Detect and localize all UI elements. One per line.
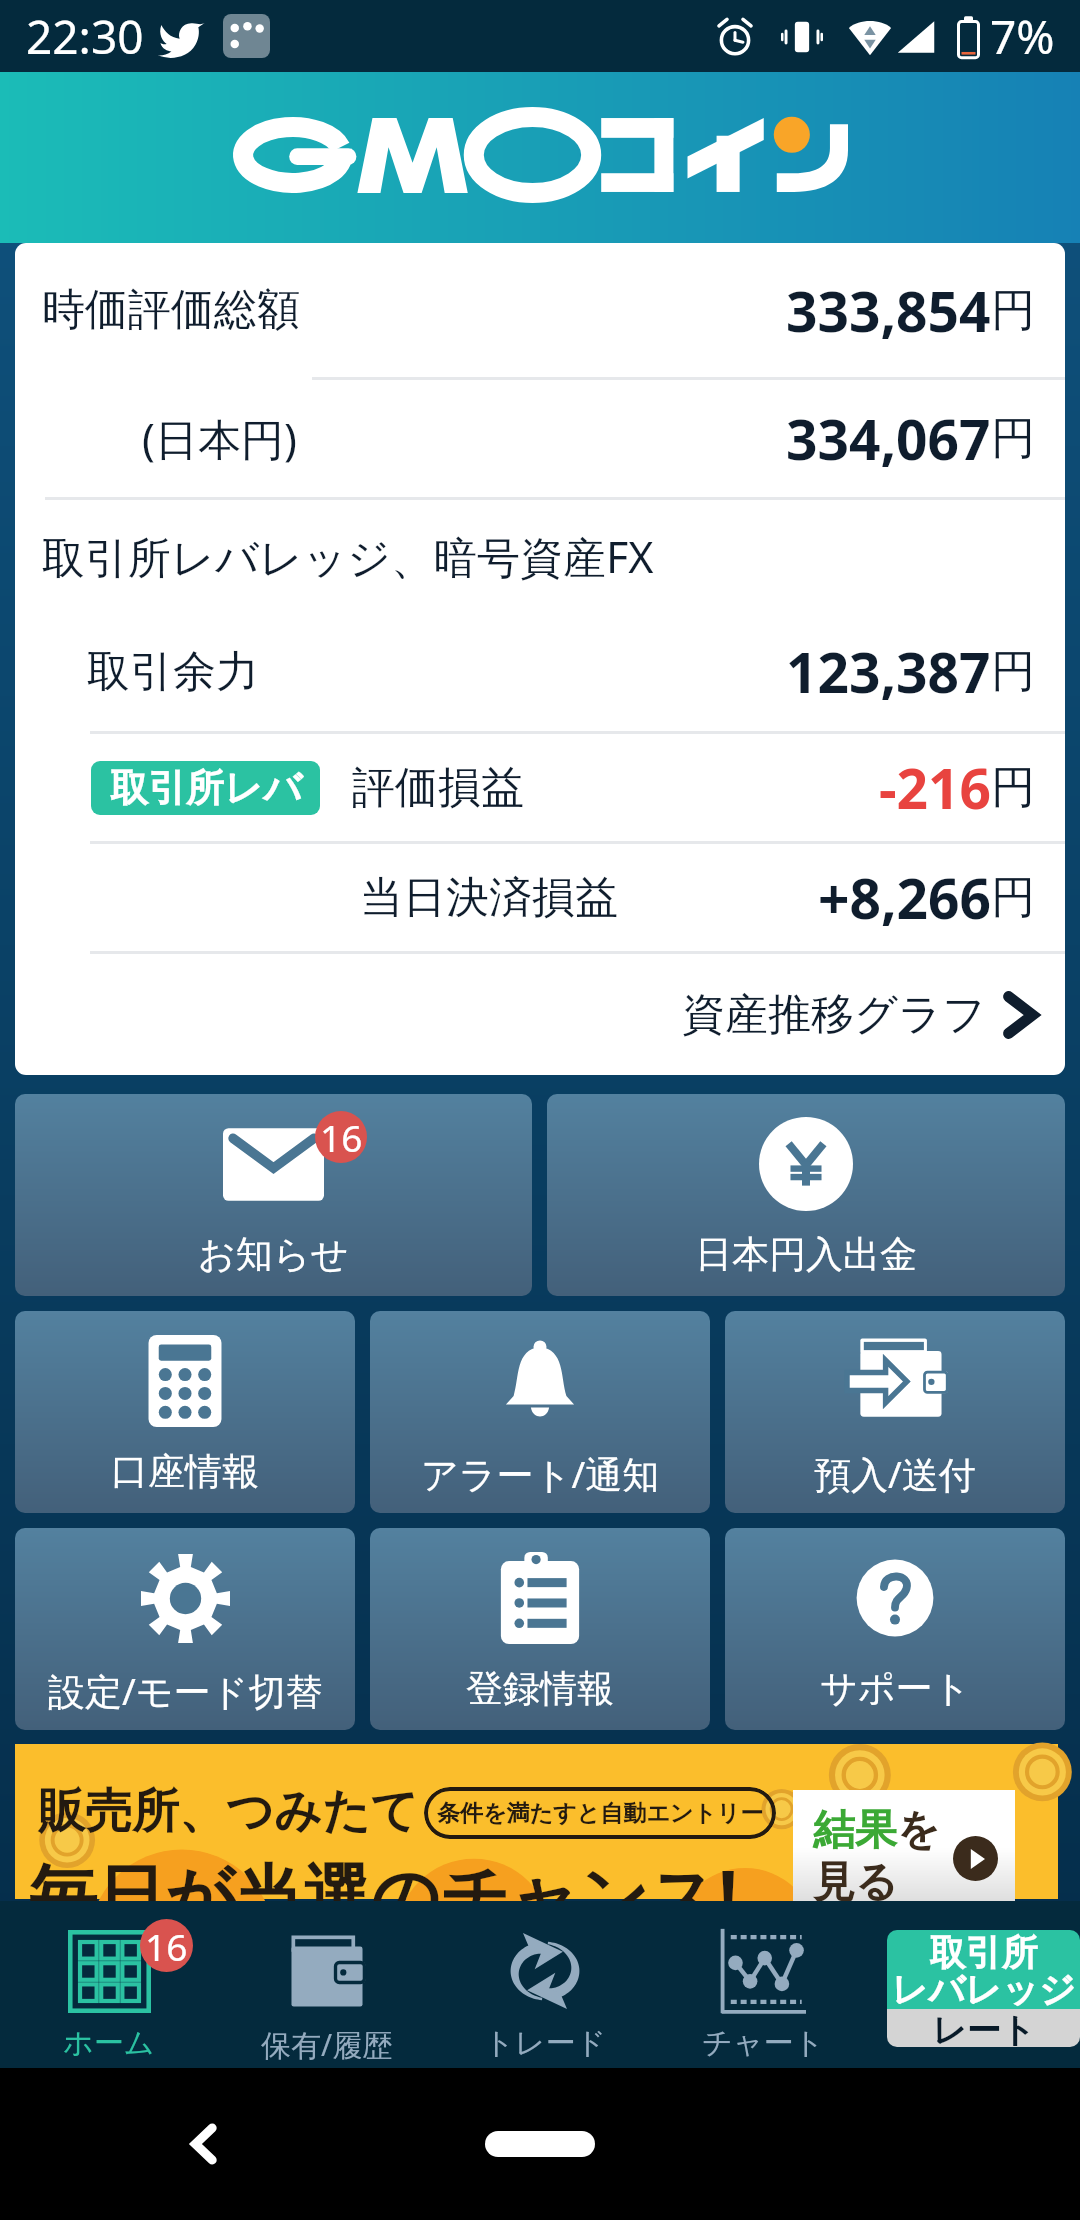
staticText: 円 [991,283,1035,338]
staticText: お知らせ [198,1231,349,1278]
staticText: 円 [991,644,1035,699]
button[interactable]: チャート [668,1901,858,2068]
button[interactable]: 日本円入出金 [547,1094,1065,1296]
staticText: 円 [991,870,1035,925]
staticText: 結果 [813,1804,897,1857]
button[interactable]: 資産推移グラフ [15,954,1065,1075]
staticText: チャート [702,2024,825,2062]
staticText: 333,854 [786,273,991,348]
staticText: +8,266 [818,860,991,935]
staticText: 保有/履歴 [261,2024,393,2065]
button[interactable]: 設定/モード切替 [15,1528,355,1730]
staticText: トレード [484,2024,607,2062]
staticText: 取引所レバレッジ、暗号資産FX [42,527,654,586]
staticText: ホーム [63,2024,155,2062]
staticText: アラート/通知 [421,1448,660,1499]
staticText: 預入/送付 [814,1448,976,1499]
staticText: (日本円) [142,409,297,468]
staticText: 22:30 [26,5,144,68]
staticText: 条件を満たすと自動エントリー [437,1799,764,1828]
button[interactable]: サポート [725,1528,1065,1730]
staticText: 円 [991,411,1035,466]
button[interactable]: アラート/通知 [370,1311,710,1513]
staticText: 7% [990,5,1055,68]
button[interactable]: 預入/送付 [725,1311,1065,1513]
staticText: 口座情報 [111,1448,259,1495]
staticText: レート [932,2009,1036,2047]
button[interactable]: 口座情報 [15,1311,355,1513]
staticText: 設定/モード切替 [48,1665,323,1716]
staticText: 123,387 [786,634,991,709]
button[interactable]: 取引所 レバレッジ [887,1930,1080,2047]
button[interactable]: 保有/履歴 [232,1901,422,2068]
staticText: 登録情報 [466,1665,614,1712]
staticText: 販売所、つみたて [38,1782,419,1841]
staticText: 取引所レバ [110,764,302,812]
staticText: を [897,1804,940,1857]
staticText: 円 [991,760,1035,815]
button[interactable]: 16 [14,1901,204,2068]
staticText: 334,067 [786,401,991,476]
staticText: 見る [813,1856,898,1909]
staticText: 資産推移グラフ [682,988,987,1042]
staticText: 時価評価総額 [42,283,300,337]
staticText: サポート [820,1665,971,1712]
button[interactable]: トレード [450,1901,640,2068]
staticText: 16 [145,1921,188,1971]
staticText: 取引所 レバレッジ [891,1930,1076,2009]
staticText: 評価損益 [352,761,524,815]
button[interactable]: 16 [15,1094,532,1296]
staticText: 毎日が当選のチャンス! [29,1847,738,1940]
staticText: 16 [320,1112,363,1162]
staticText: 取引余力 [87,645,259,699]
other: Back [185,2124,225,2164]
staticText: 日本円入出金 [695,1231,917,1278]
staticText: 当日決済損益 [360,871,618,925]
staticText: -216 [879,750,991,825]
button[interactable]: 登録情報 [370,1528,710,1730]
